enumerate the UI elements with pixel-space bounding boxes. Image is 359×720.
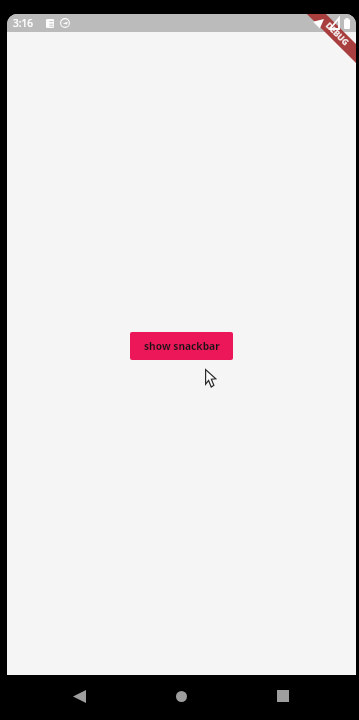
staticText: DEBUG <box>324 20 352 48</box>
button[interactable]: Recent apps <box>265 678 301 714</box>
staticText: show snackbar <box>144 339 220 353</box>
button[interactable]: show snackbar <box>130 332 233 360</box>
staticText: 3:16 <box>13 16 33 30</box>
button[interactable]: Home <box>163 678 199 714</box>
button[interactable]: Back <box>61 678 97 714</box>
